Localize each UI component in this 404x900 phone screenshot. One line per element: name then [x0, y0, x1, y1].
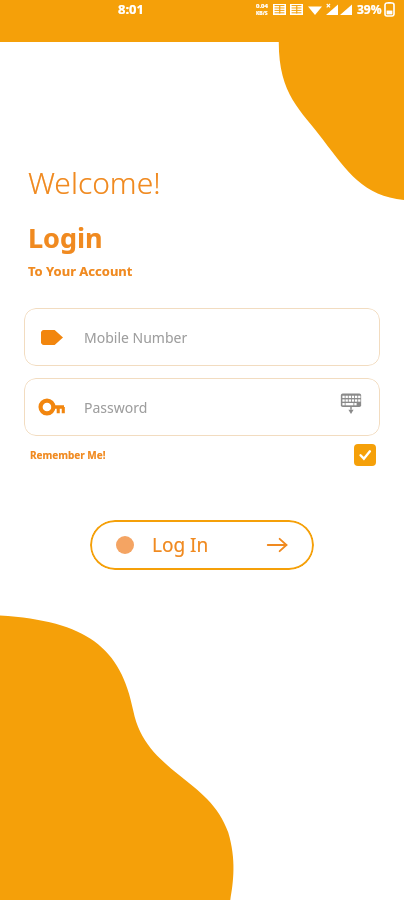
staticText: Mobile Number	[84, 328, 188, 347]
staticText: Password	[84, 398, 148, 417]
staticText: Welcome!	[28, 162, 161, 203]
staticText: 0.04	[256, 2, 268, 10]
button[interactable]: Mobile number	[24, 308, 380, 366]
staticText: KB/S	[256, 10, 268, 17]
button[interactable]: Log In	[90, 520, 314, 570]
button[interactable]: Remember Me!	[30, 448, 106, 462]
button[interactable]: Show keyboard	[336, 392, 366, 422]
other: Mobile number	[41, 330, 63, 345]
staticText: Remember Me!	[30, 448, 106, 462]
staticText: Log In	[152, 532, 209, 558]
button[interactable]: Remember Me checkbox	[354, 444, 376, 466]
button[interactable]: Password	[24, 378, 380, 436]
staticText: To Your Account	[28, 262, 133, 280]
staticText: Login	[28, 219, 103, 256]
staticText: 8:01	[118, 0, 144, 18]
staticText: 39%	[357, 1, 382, 17]
other: Password	[40, 400, 64, 414]
